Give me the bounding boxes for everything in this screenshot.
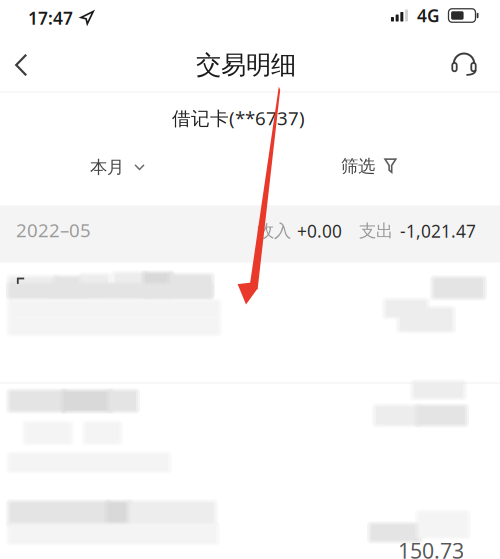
button[interactable]: 本月 <box>0 0 500 554</box>
button[interactable]: Customer service <box>446 45 482 81</box>
staticText: 本月 <box>90 156 124 178</box>
button[interactable]: 筛选 <box>0 0 500 554</box>
staticText: +0.00 <box>297 219 342 242</box>
button[interactable]: Back <box>10 47 44 81</box>
staticText: -1,021.47 <box>400 219 476 242</box>
staticText: 交易明细 <box>196 49 296 81</box>
staticText: 支出 <box>359 220 393 242</box>
staticText: 2022–05 <box>16 217 91 242</box>
staticText: 150.73 <box>398 536 464 559</box>
staticText: 收入 <box>257 220 291 242</box>
staticText: 17:47 <box>28 6 73 29</box>
staticText: 筛选 <box>341 155 375 177</box>
staticText: 4G <box>417 4 440 27</box>
staticText: 借记卡(**6737) <box>172 105 305 130</box>
